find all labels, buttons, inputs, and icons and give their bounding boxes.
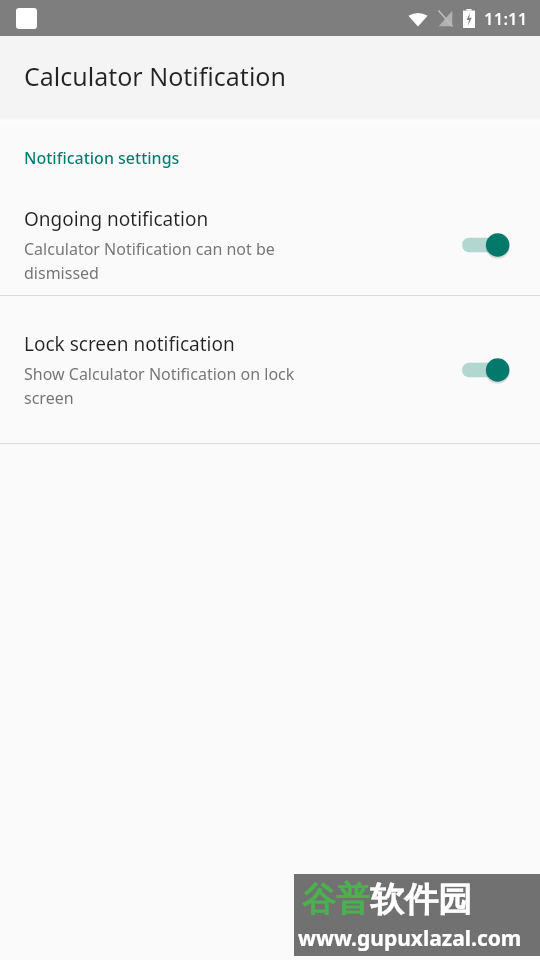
button[interactable]: Ongoing notification xyxy=(0,195,540,295)
staticText: Calculator Notification xyxy=(24,59,286,93)
staticText: Calculator Notification can not be dismi… xyxy=(24,238,275,284)
staticText: Ongoing notification xyxy=(24,206,209,232)
staticText: Lock screen notification xyxy=(24,331,235,357)
staticText: 谷普 xyxy=(302,878,370,921)
button[interactable]: Toggle setting xyxy=(462,228,516,262)
staticText: 软件园 xyxy=(370,878,472,921)
staticText: 11:11 xyxy=(484,7,528,30)
button[interactable]: Toggle setting xyxy=(462,353,516,387)
staticText: Notification settings xyxy=(24,147,180,169)
staticText: Show Calculator Notification on lock scr… xyxy=(24,363,295,409)
button[interactable]: Lock screen notification xyxy=(0,296,540,443)
staticText: www.gupuxlazal.com xyxy=(298,924,522,953)
